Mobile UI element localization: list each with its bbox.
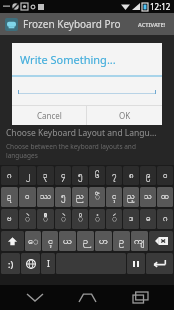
staticText: ၉: [146, 170, 151, 182]
button[interactable]: ံ: [89, 209, 105, 229]
button[interactable]: Hide keyboard: [17, 285, 53, 310]
button[interactable]: ၅: [55, 187, 71, 207]
staticText: ဉ: [83, 235, 88, 248]
staticText: ဓ: [146, 213, 151, 225]
button[interactable]: ဍ: [1, 187, 18, 207]
button[interactable]: ၚ: [106, 187, 122, 207]
staticText: ၚ: [48, 235, 53, 248]
staticText: ဟ: [99, 235, 108, 248]
staticText: ဲ: [61, 213, 66, 225]
button[interactable]: ကျ: [131, 231, 148, 251]
staticText: ဂ: [163, 213, 168, 225]
button[interactable]: :): [1, 253, 20, 274]
button[interactable]: ၄: [55, 166, 71, 185]
staticText: ိ: [78, 213, 83, 225]
staticText: ေ: [28, 235, 39, 248]
button[interactable]: Recent apps: [122, 285, 158, 310]
button[interactable]: Delete: [149, 231, 173, 251]
button[interactable]: ၀: [19, 187, 36, 207]
staticText: ဲ: [25, 213, 30, 225]
staticText: ိဳ: [43, 213, 48, 225]
button[interactable]: ဲ: [19, 209, 36, 229]
button[interactable]: Pause: [127, 253, 145, 274]
staticText: ဿ: [40, 191, 52, 203]
button[interactable]: I: [41, 253, 55, 274]
button[interactable]: Enter: [146, 253, 173, 274]
button[interactable]: ယ: [59, 231, 76, 251]
staticText: ၆: [95, 170, 100, 182]
button[interactable]: သ: [140, 187, 156, 207]
staticText: ယ: [63, 235, 72, 248]
staticText: ၀: [25, 191, 30, 203]
button[interactable]: ဂ: [157, 209, 173, 229]
button[interactable]: ဓ: [140, 209, 156, 229]
staticText: ကျ: [134, 235, 145, 248]
button[interactable]: ၂: [19, 166, 36, 185]
button[interactable]: ဒ: [123, 209, 139, 229]
staticText: 12:12: [150, 1, 171, 12]
button[interactable]: Shift: [1, 231, 24, 251]
staticText: Choose between the keyboard layouts and: [6, 142, 136, 151]
staticText: Cancel: [37, 110, 62, 121]
staticText: ဂ: [7, 170, 12, 182]
button[interactable]: ဥ: [113, 231, 130, 251]
button[interactable]: ထ: [157, 187, 173, 207]
staticText: ၃: [43, 170, 48, 182]
button[interactable]: Home: [69, 285, 105, 310]
button[interactable]: ၚ: [42, 231, 58, 251]
button[interactable]: OK: [87, 106, 162, 125]
staticText: ဒ: [129, 213, 134, 225]
button[interactable]: ACTIVATE!: [135, 17, 169, 32]
button[interactable]: ၃: [37, 166, 54, 185]
button[interactable]: ဟ: [95, 231, 112, 251]
staticText: ၈: [129, 170, 134, 182]
staticText: ၂: [26, 170, 30, 182]
staticText: ိံ: [95, 191, 100, 203]
staticText: Frozen Keyboard Pro: [23, 17, 121, 31]
button[interactable]: ဴ: [106, 209, 122, 229]
button[interactable]: Change language: [21, 253, 40, 274]
button[interactable]: ၉: [140, 166, 156, 185]
staticText: ACTIVATE!: [138, 21, 166, 28]
staticText: သ: [144, 191, 152, 203]
staticText: ၅: [61, 191, 66, 203]
staticText: languages: [6, 151, 38, 160]
staticText: OK: [119, 110, 131, 121]
button[interactable]: ၇: [106, 166, 122, 185]
button[interactable]: ဂ: [1, 166, 18, 185]
button[interactable]: ေ: [25, 231, 41, 251]
button[interactable]: ဗ: [1, 209, 18, 229]
button[interactable]: Cancel: [12, 106, 86, 125]
staticText: Write Something...: [20, 52, 116, 67]
button[interactable]: ဿ: [37, 187, 54, 207]
button[interactable]: ၅: [72, 166, 88, 185]
staticText: ၀: [163, 170, 168, 182]
button[interactable]: ဲ: [55, 209, 71, 229]
staticText: ၄: [61, 170, 66, 182]
staticText: ည့: [127, 191, 135, 203]
staticText: ဗ: [7, 213, 12, 225]
button[interactable]: ၀: [157, 166, 173, 185]
staticText: ဍ: [7, 191, 12, 203]
staticText: ၚ: [112, 191, 117, 203]
staticText: Choose Keyboard Layout and Langu…: [6, 127, 157, 139]
staticText: ၅: [78, 170, 83, 182]
button[interactable]: ၈: [123, 166, 139, 185]
staticText: ထ: [161, 191, 169, 203]
button[interactable]: ိဳ: [37, 209, 54, 229]
staticText: :): [8, 258, 14, 270]
button[interactable]: ိ: [72, 209, 88, 229]
staticText: I: [47, 258, 50, 269]
staticText: ၇: [112, 170, 117, 182]
button[interactable]: ည့: [123, 187, 139, 207]
staticText: ဴ: [112, 213, 117, 225]
staticText: ည: [76, 191, 84, 203]
staticText: ဥ: [119, 235, 124, 248]
button[interactable]: ၆: [89, 166, 105, 185]
button[interactable]: ဉ: [77, 231, 94, 251]
button[interactable]: ည: [72, 187, 88, 207]
button[interactable]: ိံ: [89, 187, 105, 207]
staticText: ံ: [95, 213, 100, 225]
